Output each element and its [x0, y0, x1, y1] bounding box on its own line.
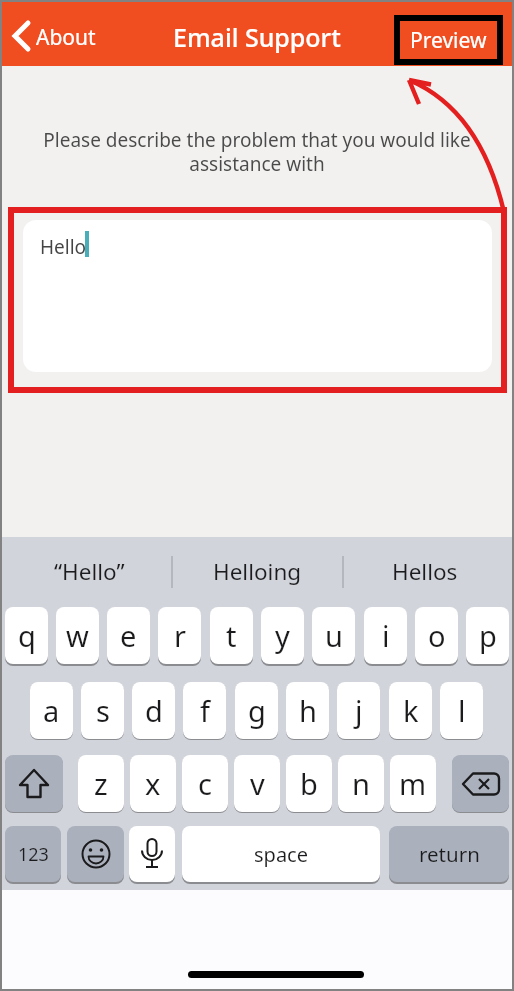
staticText: Please describe the problem that you wou…	[0, 127, 514, 187]
button[interactable]: p	[466, 607, 509, 664]
button[interactable]: s	[81, 682, 124, 739]
staticText: x	[145, 764, 161, 803]
staticText: t	[226, 616, 237, 655]
staticText: l	[458, 691, 466, 730]
button[interactable]: l	[440, 682, 483, 739]
button[interactable]: space	[182, 826, 380, 882]
button[interactable]: c	[182, 755, 228, 812]
staticText: 123	[18, 842, 49, 867]
staticText: d	[145, 691, 163, 730]
button[interactable]: j	[337, 682, 380, 739]
button[interactable]: e	[107, 607, 150, 664]
button[interactable]	[129, 826, 175, 882]
button[interactable]: h	[286, 682, 329, 739]
button[interactable]: t	[210, 607, 253, 664]
staticText: v	[250, 764, 265, 803]
button[interactable]	[5, 755, 63, 812]
staticText: a	[43, 691, 60, 730]
button[interactable]: q	[5, 607, 48, 664]
staticText: space	[254, 841, 308, 868]
button[interactable]: z	[78, 755, 124, 812]
staticText: return	[419, 840, 480, 868]
staticText: “Hello”	[54, 556, 125, 587]
button[interactable]: d	[132, 682, 175, 739]
staticText: Preview	[410, 26, 487, 55]
button[interactable]: b	[286, 755, 332, 812]
button[interactable]	[67, 826, 124, 882]
button[interactable]: 123	[5, 826, 61, 882]
button[interactable]: “Hello”	[8, 550, 170, 592]
button[interactable]: u	[312, 607, 355, 664]
button[interactable]: r	[158, 607, 201, 664]
staticText: Hello	[40, 234, 87, 260]
staticText: i	[382, 616, 390, 655]
staticText: j	[355, 691, 363, 730]
button[interactable]: f	[183, 682, 226, 739]
button[interactable]: w	[56, 607, 99, 664]
staticText: m	[399, 764, 427, 803]
button[interactable]: m	[390, 755, 436, 812]
button[interactable]: a	[30, 682, 73, 739]
staticText: q	[18, 616, 36, 655]
staticText: f	[200, 691, 210, 730]
staticText: r	[174, 616, 186, 655]
button[interactable]: Hellos	[344, 550, 506, 592]
staticText: n	[352, 764, 370, 803]
staticText: p	[479, 616, 497, 655]
staticText: y	[275, 616, 290, 655]
button[interactable]: k	[389, 682, 432, 739]
button[interactable]: Preview	[394, 15, 503, 65]
staticText: s	[96, 691, 110, 730]
staticText: Email Support	[173, 20, 341, 54]
button[interactable]: o	[415, 607, 458, 664]
button[interactable]: Helloing	[173, 550, 341, 592]
staticText: o	[428, 616, 446, 655]
button[interactable]: y	[261, 607, 304, 664]
button[interactable]: return	[389, 826, 509, 882]
staticText: About	[36, 23, 96, 52]
button[interactable]: Hello	[23, 220, 492, 372]
staticText: c	[198, 764, 212, 803]
button[interactable]: i	[364, 607, 407, 664]
staticText: e	[120, 616, 137, 655]
button[interactable]: g	[235, 682, 278, 739]
staticText: Helloing	[213, 556, 302, 587]
staticText: g	[248, 691, 266, 730]
staticText: w	[66, 616, 89, 655]
button[interactable]: n	[338, 755, 384, 812]
staticText: Hellos	[392, 556, 458, 587]
button[interactable]: v	[234, 755, 280, 812]
staticText: k	[403, 691, 419, 730]
staticText: u	[325, 616, 343, 655]
button[interactable]: x	[130, 755, 176, 812]
staticText: b	[300, 764, 318, 803]
button[interactable]: About	[6, 16, 106, 56]
staticText: h	[299, 691, 317, 730]
staticText: z	[94, 764, 108, 803]
button[interactable]	[452, 755, 509, 812]
